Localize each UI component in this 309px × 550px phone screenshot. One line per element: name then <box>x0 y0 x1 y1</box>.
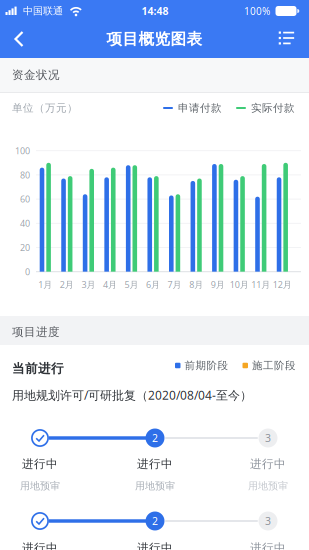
staticText: 项目概览图表 <box>106 29 202 48</box>
staticText: 用地规划许可/可研批复（2020/08/04-至今） <box>12 387 252 403</box>
staticText: 3 <box>265 514 271 528</box>
staticText: 80 <box>20 169 30 181</box>
staticText: 3月 <box>81 278 95 290</box>
staticText: 100% <box>244 4 270 18</box>
staticText: 4月 <box>103 278 117 290</box>
staticText: 8月 <box>189 278 203 290</box>
staticText: 资金状况 <box>12 68 60 82</box>
staticText: 40 <box>20 217 30 229</box>
staticText: 3 <box>265 431 271 445</box>
staticText: 6月 <box>146 278 160 290</box>
staticText: 实际付款 <box>251 102 295 114</box>
staticText: 进行中 <box>22 541 58 550</box>
staticText: 进行中 <box>137 541 173 550</box>
staticText: 5月 <box>124 278 138 290</box>
staticText: 中国联通 <box>23 5 63 17</box>
staticText: 申请付款 <box>178 102 222 114</box>
staticText: 用地预审 <box>20 480 60 492</box>
staticText: 14:48 <box>141 4 168 18</box>
staticText: 当前进行 <box>12 361 64 376</box>
staticText: 单位（万元） <box>12 102 78 114</box>
staticText: 2月 <box>60 278 74 290</box>
staticText: 12月 <box>273 278 292 290</box>
staticText: 11月 <box>251 278 270 290</box>
staticText: 进行中 <box>250 457 286 471</box>
staticText: 100 <box>15 145 30 157</box>
staticText: 进行中 <box>22 457 58 471</box>
staticText: 60 <box>20 193 30 205</box>
staticText: 9月 <box>211 278 225 290</box>
staticText: 用地预审 <box>248 480 288 492</box>
staticText: 前期阶段 <box>184 359 228 372</box>
staticText: 1月 <box>38 278 52 290</box>
staticText: 进行中 <box>137 457 173 471</box>
staticText: 2 <box>152 431 158 445</box>
staticText: 20 <box>20 241 30 253</box>
staticText: 进行中 <box>250 541 286 550</box>
staticText: 10月 <box>230 278 249 290</box>
staticText: 施工阶段 <box>252 359 296 372</box>
staticText: 用地预审 <box>135 480 175 492</box>
staticText: 7月 <box>168 278 182 290</box>
staticText: 0 <box>25 266 30 278</box>
staticText: 项目进度 <box>12 325 60 339</box>
staticText: 2 <box>152 514 158 528</box>
